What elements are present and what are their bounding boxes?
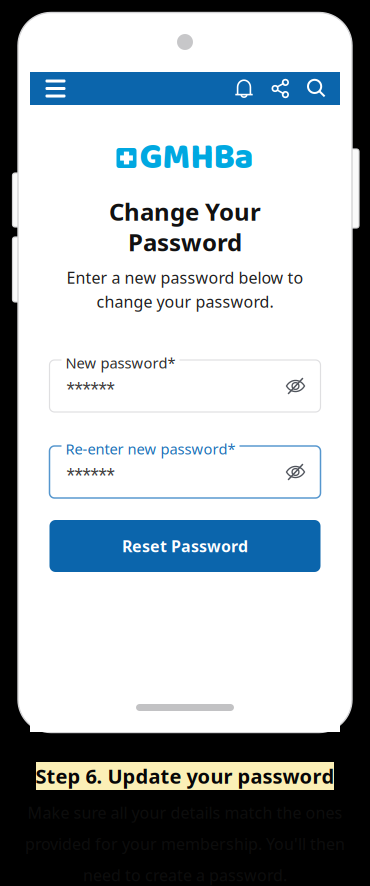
staticText: Reset Password	[122, 535, 248, 557]
staticText: Re-enter new password*	[65, 439, 235, 458]
button[interactable]: Search	[298, 72, 334, 105]
button[interactable]: Show password	[280, 371, 310, 401]
staticText: Password	[128, 226, 242, 258]
staticText: Change Your	[109, 195, 261, 227]
staticText: New password*	[65, 353, 175, 372]
button[interactable]: Share	[262, 72, 298, 105]
staticText: Step 6. Update your password	[35, 763, 334, 789]
staticText: Enter a new password below to	[66, 267, 303, 288]
button[interactable]: Notifications	[226, 72, 262, 105]
staticText: Make sure all your details match the one…	[27, 802, 342, 823]
staticText: ******	[66, 378, 114, 401]
staticText: need to create a password.	[83, 864, 287, 886]
staticText: provided for your membership. You'll the…	[25, 833, 345, 854]
staticText: GMHBa	[139, 130, 253, 186]
staticText: ******	[66, 464, 114, 487]
button[interactable]: Show password	[280, 457, 310, 487]
button[interactable]: Menu	[39, 72, 72, 105]
button[interactable]: Reset Password	[49, 520, 320, 572]
staticText: change your password.	[96, 291, 273, 312]
